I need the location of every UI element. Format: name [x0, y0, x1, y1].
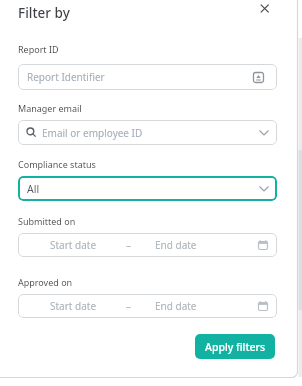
staticText: Report ID — [18, 43, 59, 55]
staticText: – — [126, 238, 131, 252]
staticText: Start date — [50, 299, 97, 313]
staticText: Approved on — [18, 276, 73, 288]
staticText: Report Identifier — [27, 70, 105, 84]
button[interactable]: Report Identifier — [18, 64, 277, 90]
staticText: Filter by — [18, 4, 70, 22]
button[interactable]: All — [18, 176, 277, 201]
button[interactable] — [256, 0, 273, 17]
button[interactable]: Start date — [18, 233, 277, 257]
staticText: – — [126, 299, 131, 313]
staticText: End date — [155, 299, 197, 313]
staticText: Manager email — [18, 102, 82, 114]
button[interactable]: Apply filters — [195, 334, 275, 359]
staticText: Email or employee ID — [42, 126, 143, 140]
button[interactable]: Start date — [18, 294, 277, 318]
button[interactable]: Email or employee ID — [18, 120, 277, 145]
staticText: All — [27, 182, 40, 196]
staticText: Submitted on — [18, 215, 76, 227]
staticText: Start date — [50, 238, 97, 252]
staticText: End date — [155, 238, 197, 252]
staticText: Apply filters — [205, 340, 266, 354]
staticText: Compliance status — [18, 158, 96, 170]
